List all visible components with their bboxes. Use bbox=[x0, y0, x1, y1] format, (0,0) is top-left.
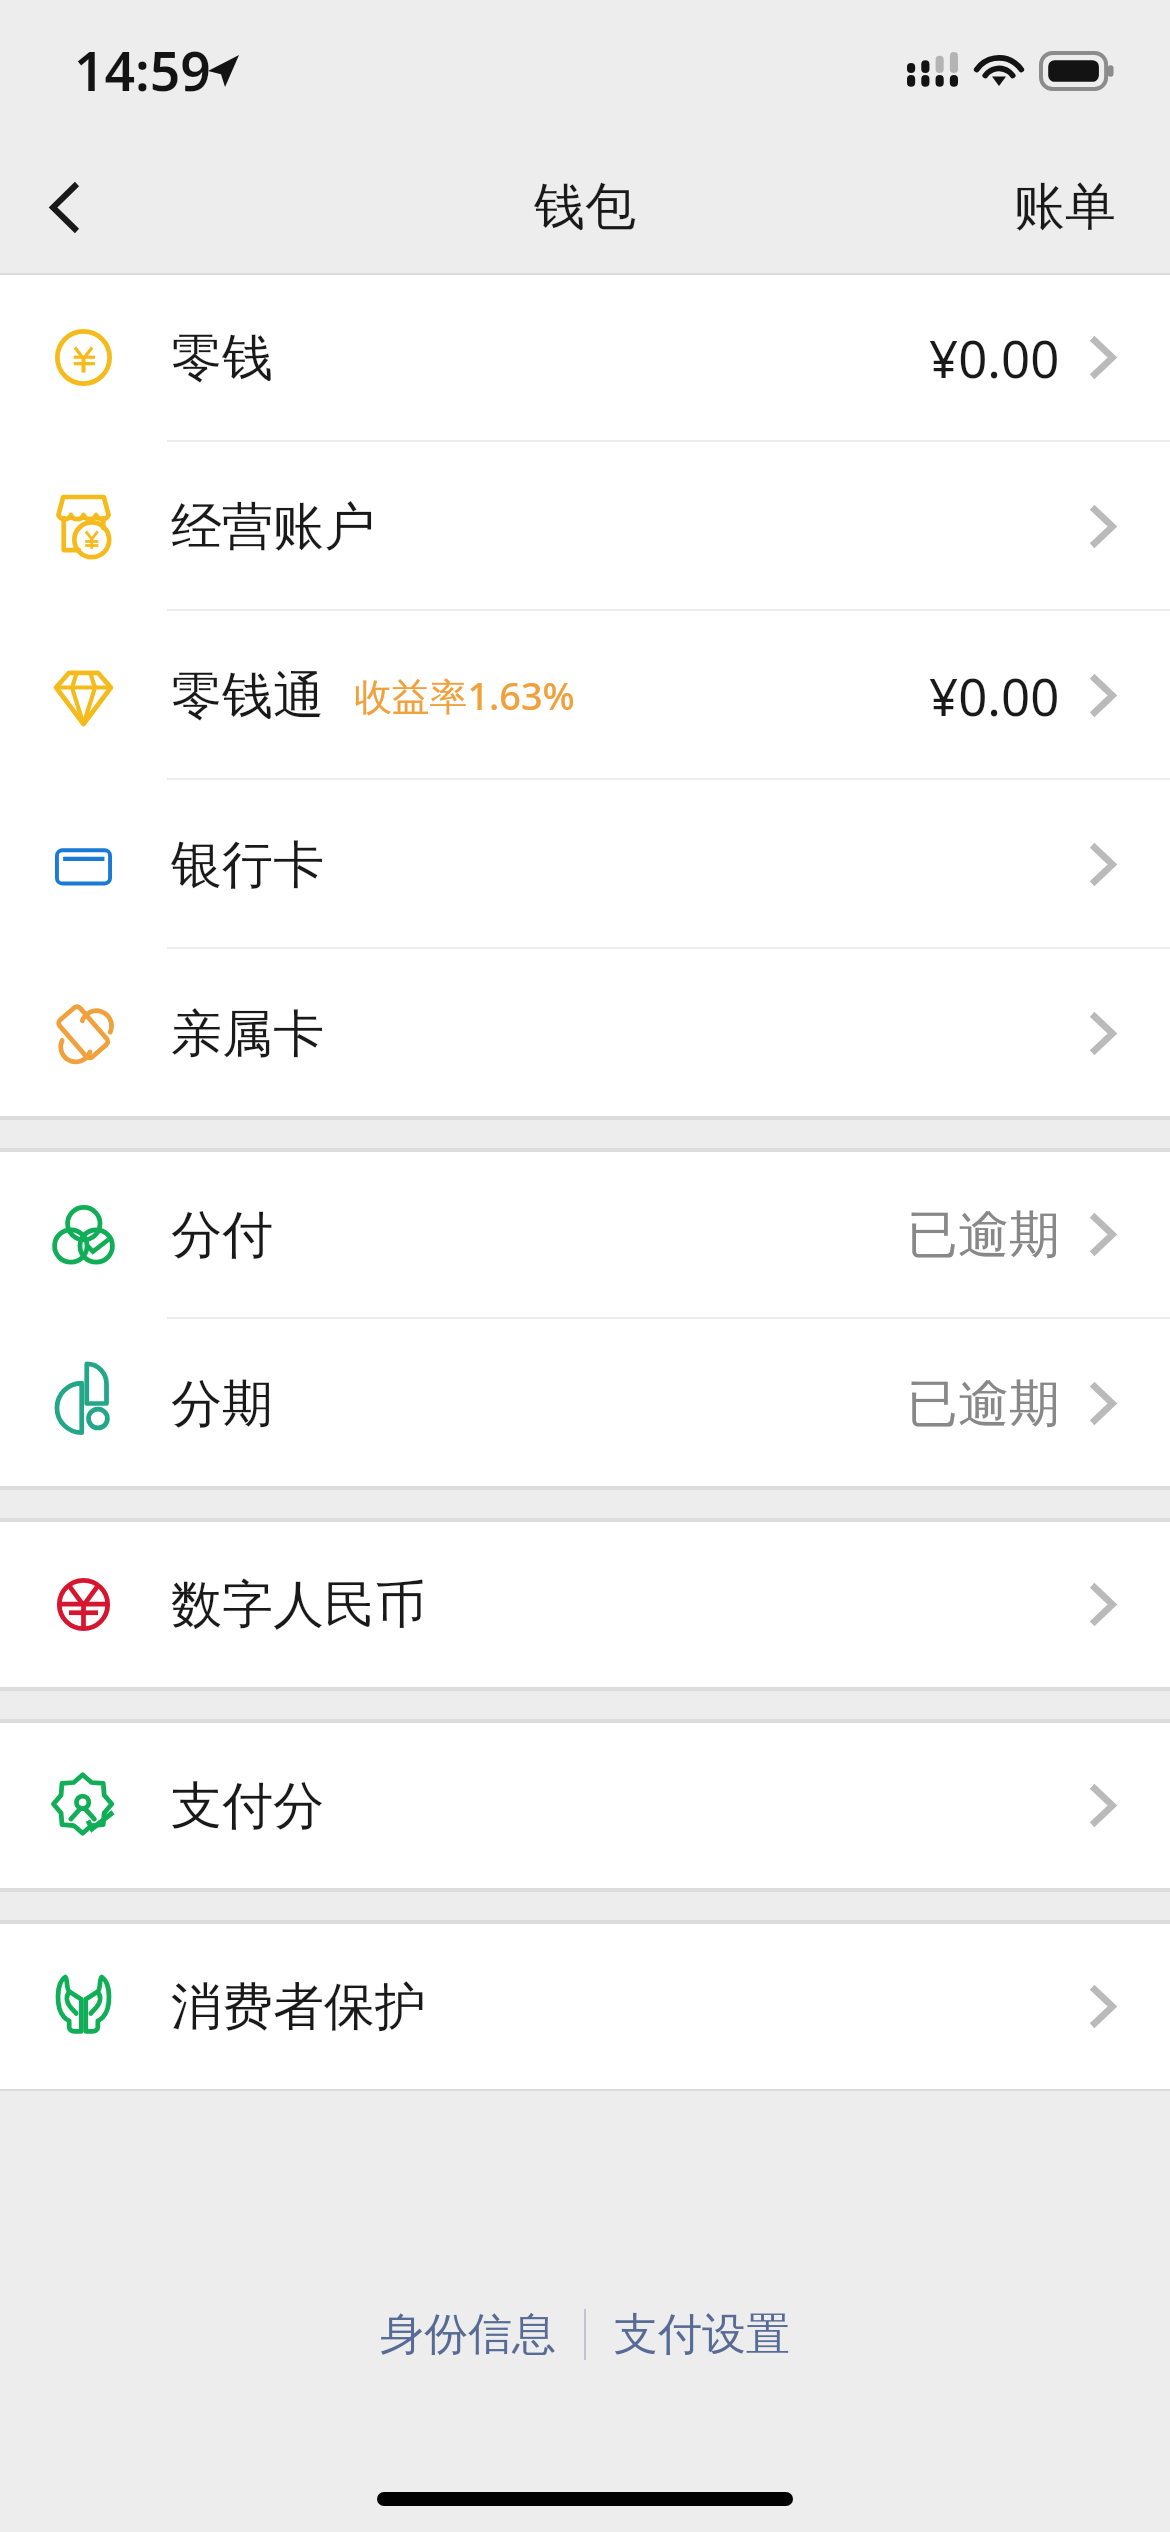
staticText: 零钱 bbox=[171, 326, 273, 390]
button[interactable]: 支付分 bbox=[0, 1721, 1170, 1890]
button[interactable]: 支付设置 bbox=[600, 2283, 804, 2386]
staticText: 已逾期 bbox=[907, 1203, 1060, 1267]
staticText: 身份信息 bbox=[380, 2307, 556, 2362]
staticText: 14:59 bbox=[74, 34, 211, 107]
staticText: 支付分 bbox=[171, 1774, 324, 1838]
button[interactable]: 身份信息 bbox=[366, 2283, 570, 2386]
button[interactable]: 消费者保护 bbox=[0, 1922, 1170, 2091]
button[interactable]: 分期 bbox=[0, 1319, 1170, 1488]
button[interactable]: 账单 bbox=[948, 145, 1170, 269]
staticText: 经营账户 bbox=[171, 495, 375, 559]
button[interactable]: 银行卡 bbox=[0, 780, 1170, 949]
staticText: 数字人民币 bbox=[171, 1573, 426, 1637]
button[interactable]: 亲属卡 bbox=[0, 949, 1170, 1118]
staticText: 已逾期 bbox=[907, 1372, 1060, 1436]
staticText: ¥0.00 bbox=[929, 661, 1060, 730]
staticText: 分付 bbox=[171, 1203, 273, 1267]
staticText: ¥0.00 bbox=[929, 323, 1060, 392]
button[interactable]: 零钱通 bbox=[0, 611, 1170, 780]
staticText: 银行卡 bbox=[171, 833, 324, 897]
staticText: 钱包 bbox=[534, 175, 636, 239]
staticText: 消费者保护 bbox=[171, 1975, 426, 2039]
button[interactable]: Back bbox=[0, 141, 130, 273]
staticText: 零钱通 bbox=[171, 664, 324, 728]
staticText: 支付设置 bbox=[614, 2307, 790, 2362]
staticText: 分期 bbox=[171, 1372, 273, 1436]
button[interactable]: 数字人民币 bbox=[0, 1520, 1170, 1689]
button[interactable]: 零钱 bbox=[0, 273, 1170, 442]
staticText: 收益率1.63% bbox=[354, 670, 575, 722]
staticText: 账单 bbox=[1014, 175, 1116, 239]
staticText: 亲属卡 bbox=[171, 1002, 324, 1066]
button[interactable]: 分付 bbox=[0, 1150, 1170, 1319]
button[interactable]: 经营账户 bbox=[0, 442, 1170, 611]
